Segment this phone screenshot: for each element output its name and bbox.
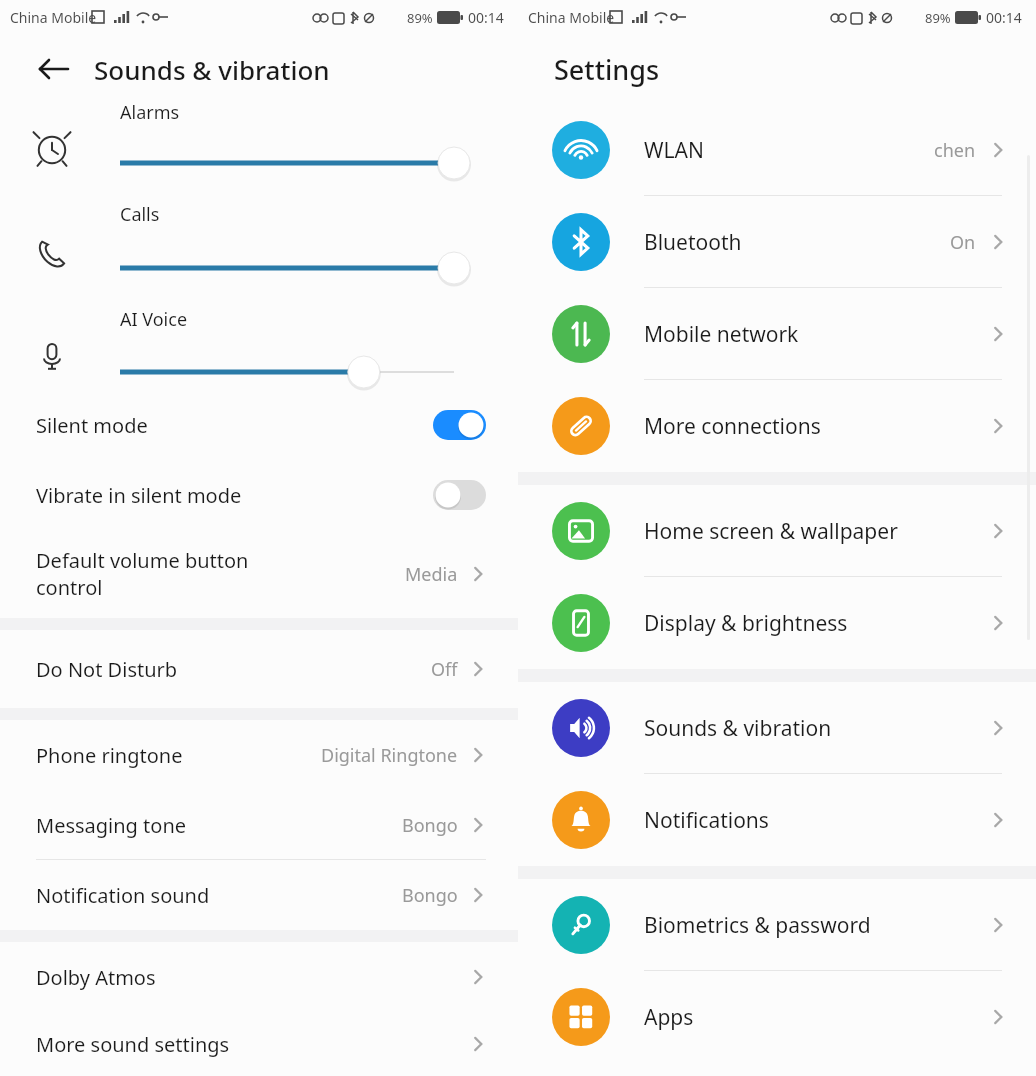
staticText: Phone ringtone: [36, 742, 321, 769]
staticText: Calls: [120, 202, 160, 227]
staticText: Alarms: [120, 100, 180, 125]
staticText: Display & brightness: [644, 609, 988, 638]
staticText: Sounds & vibration: [94, 52, 330, 87]
staticText: Apps: [644, 1003, 988, 1032]
staticText: Do Not Disturb: [36, 656, 431, 683]
staticText: Bongo: [402, 883, 458, 908]
staticText: Dolby Atmos: [36, 964, 468, 991]
staticText: 00:14: [986, 8, 1022, 27]
staticText: Sounds & vibration: [644, 714, 988, 743]
button[interactable]: Home screen & wallpaper: [518, 485, 1036, 577]
staticText: 89%: [925, 9, 951, 27]
staticText: Bluetooth: [644, 228, 950, 257]
staticText: Home screen & wallpaper: [644, 517, 988, 546]
button[interactable]: More sound settings: [0, 1012, 518, 1076]
staticText: Biometrics & password: [644, 911, 988, 940]
staticText: Notification sound: [36, 882, 402, 909]
staticText: WLAN: [644, 136, 934, 165]
staticText: Media: [405, 562, 458, 587]
staticText: Notifications: [644, 806, 988, 835]
staticText: 00:14: [468, 8, 504, 27]
button[interactable]: Vibrate in silent mode: [0, 460, 518, 530]
staticText: China Mobile: [10, 8, 97, 27]
staticText: Default volume button: [36, 547, 249, 574]
button[interactable]: Apps: [518, 971, 1036, 1063]
staticText: Bongo: [402, 813, 458, 838]
button[interactable]: Sounds & vibration: [518, 682, 1036, 774]
button[interactable]: WLAN: [518, 104, 1036, 196]
staticText: Settings: [554, 51, 660, 88]
button[interactable]: Mobile network: [518, 288, 1036, 380]
staticText: Mobile network: [644, 320, 988, 349]
staticText: On: [950, 230, 976, 255]
button[interactable]: Silent mode: [0, 390, 518, 460]
button[interactable]: Do Not Disturb: [0, 630, 518, 708]
button[interactable]: Biometrics & password: [518, 879, 1036, 971]
button[interactable]: Phone ringtone: [0, 720, 518, 790]
staticText: 89%: [407, 9, 433, 27]
button[interactable]: Dolby Atmos: [0, 942, 518, 1012]
staticText: Silent mode: [36, 412, 433, 439]
button[interactable]: Notifications: [518, 774, 1036, 866]
button[interactable]: Display & brightness: [518, 577, 1036, 669]
button[interactable]: More connections: [518, 380, 1036, 472]
staticText: Vibrate in silent mode: [36, 482, 433, 509]
staticText: Messaging tone: [36, 812, 402, 839]
button[interactable]: Bluetooth: [518, 196, 1036, 288]
button[interactable]: Default volume button: [0, 530, 518, 618]
staticText: More connections: [644, 412, 988, 441]
staticText: chen: [934, 138, 976, 163]
button[interactable]: Messaging tone: [0, 790, 518, 860]
staticText: Digital Ringtone: [321, 743, 458, 768]
button[interactable]: Notification sound: [0, 860, 518, 930]
button[interactable]: Back: [30, 46, 76, 92]
staticText: Off: [431, 657, 458, 682]
staticText: AI Voice: [120, 307, 188, 332]
staticText: More sound settings: [36, 1031, 468, 1058]
staticText: control: [36, 574, 103, 601]
staticText: China Mobile: [528, 8, 615, 27]
